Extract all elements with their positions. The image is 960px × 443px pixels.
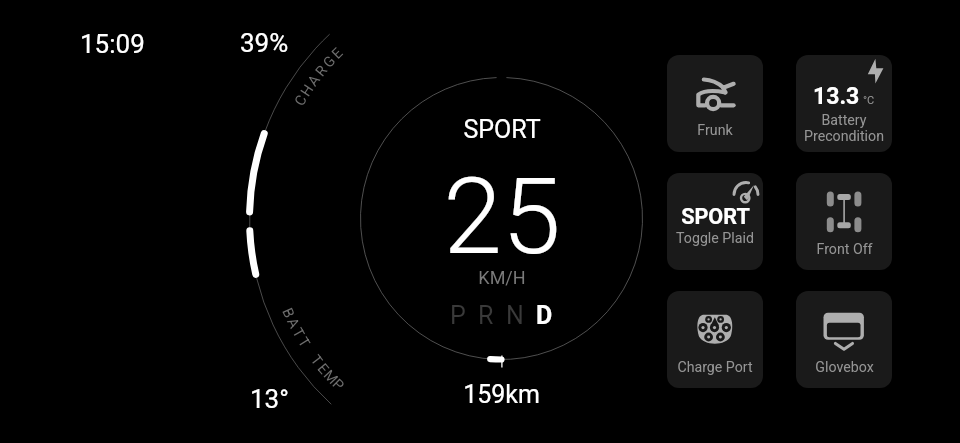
staticText: °C — [863, 94, 875, 107]
staticText: Glovebox — [815, 359, 874, 376]
button[interactable]: Charge Port — [667, 291, 763, 388]
staticText: D — [536, 301, 553, 330]
button[interactable]: Glovebox — [796, 291, 892, 388]
staticText: N — [506, 301, 524, 330]
staticText: 39% — [240, 28, 289, 58]
staticText: 15:09 — [80, 29, 145, 59]
staticText: 13° — [250, 384, 289, 414]
staticText: 25 — [443, 155, 561, 279]
staticText: Frunk — [697, 122, 733, 139]
button[interactable]: Frunk — [667, 55, 763, 152]
staticText: SPORT — [463, 115, 541, 144]
staticText: Battery — [821, 112, 867, 129]
staticText: SPORT — [681, 204, 750, 229]
staticText: Front Off — [816, 241, 873, 258]
staticText: R — [478, 301, 494, 330]
staticText: 159km — [463, 380, 540, 409]
staticText: KM/H — [478, 267, 526, 288]
button[interactable]: Front Off — [796, 173, 892, 270]
staticText: Toggle Plaid — [676, 230, 754, 247]
staticText: Precondition — [804, 128, 884, 145]
button[interactable]: Toggle Plaid — [667, 173, 763, 270]
staticText: Charge Port — [677, 359, 753, 376]
staticText: P — [450, 301, 466, 330]
staticText: 13.3 — [813, 83, 860, 110]
button[interactable]: Battery Precondition — [796, 55, 892, 152]
